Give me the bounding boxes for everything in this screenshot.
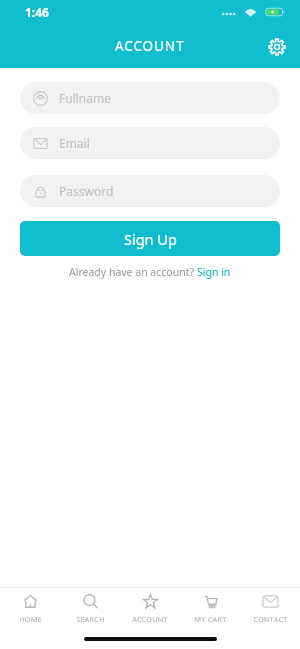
- button[interactable]: ACCOUNT: [120, 593, 180, 649]
- staticText: HOME: [19, 614, 42, 624]
- staticText: 1:46: [25, 4, 49, 20]
- button[interactable]: CONTACT: [240, 593, 300, 649]
- staticText: CONTACT: [253, 614, 288, 624]
- staticText: MY CART: [194, 614, 227, 624]
- staticText: SEARCH: [76, 614, 105, 624]
- button[interactable]: Fullname: [20, 82, 280, 114]
- staticText: Email: [59, 135, 90, 151]
- button[interactable]: SEARCH: [60, 593, 120, 649]
- staticText: Already have an account?: [69, 265, 197, 279]
- button[interactable]: Sign in: [197, 265, 231, 279]
- button[interactable]: Password: [20, 175, 280, 207]
- button[interactable]: Settings: [260, 30, 294, 64]
- button[interactable]: HOME: [0, 593, 60, 649]
- staticText: Fullname: [59, 90, 111, 106]
- button[interactable]: MY CART: [180, 593, 240, 649]
- button[interactable]: Sign Up: [20, 221, 280, 256]
- button[interactable]: Email: [20, 127, 280, 159]
- staticText: ACCOUNT: [115, 37, 185, 55]
- staticText: Password: [59, 183, 114, 199]
- staticText: Sign in: [197, 265, 231, 279]
- staticText: ACCOUNT: [132, 614, 168, 624]
- staticText: Sign Up: [124, 229, 177, 249]
